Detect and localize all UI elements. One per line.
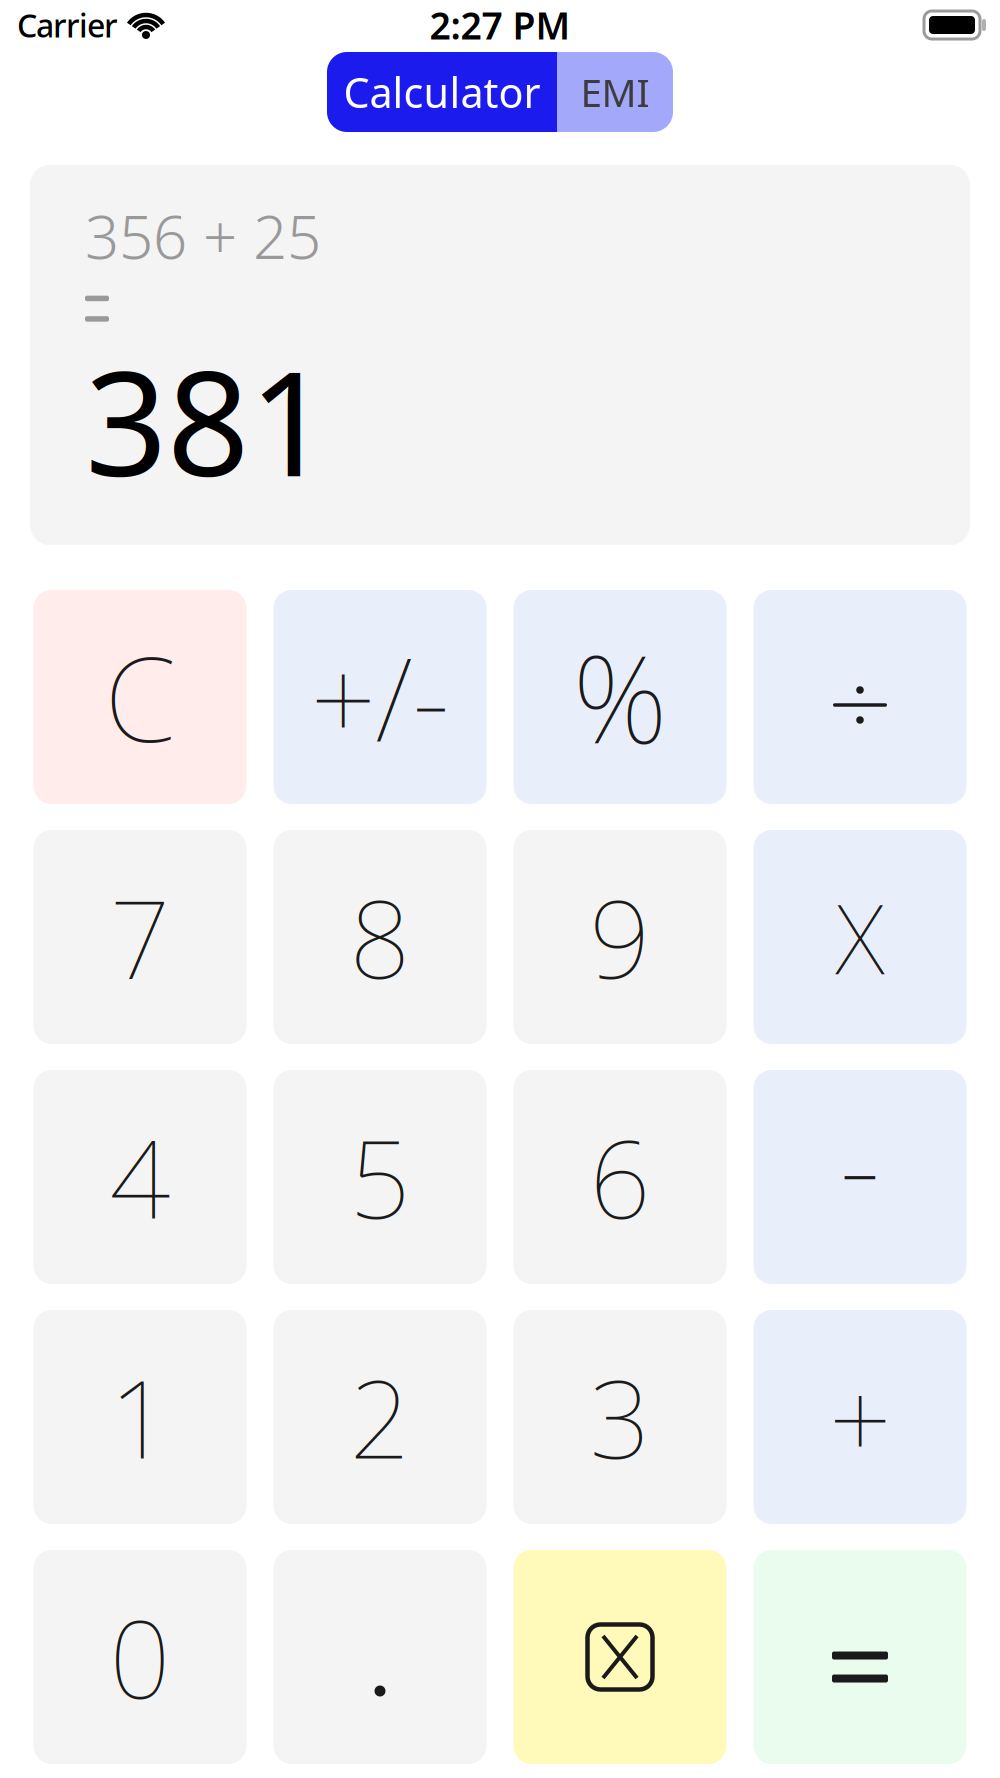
staticText: X <box>835 873 884 1001</box>
staticText: 4 <box>109 1106 170 1248</box>
staticText: + <box>829 1344 891 1490</box>
button[interactable]: X <box>753 830 966 1044</box>
staticText: 1 <box>109 1346 170 1488</box>
button[interactable]: 3 <box>513 1310 726 1524</box>
button[interactable]: Backspace <box>513 1550 726 1764</box>
button[interactable]: % <box>513 590 726 804</box>
button[interactable]: 8 <box>273 830 486 1044</box>
button[interactable]: - <box>753 1070 966 1284</box>
button[interactable]: Decimal point <box>273 1550 486 1764</box>
button[interactable]: Calculator <box>327 52 557 132</box>
button[interactable]: 0 <box>33 1550 246 1764</box>
button[interactable]: 9 <box>513 830 726 1044</box>
staticText: EMI <box>580 66 649 118</box>
button[interactable]: EMI <box>557 52 673 132</box>
staticText: 8 <box>349 866 410 1008</box>
staticText: 5 <box>349 1106 410 1248</box>
button[interactable]: 1 <box>33 1310 246 1524</box>
staticText: C <box>104 620 175 774</box>
button[interactable]: 7 <box>33 830 246 1044</box>
staticText: 3 <box>589 1346 650 1488</box>
button[interactable]: Equals <box>753 1550 966 1764</box>
button[interactable]: Divide <box>753 590 966 804</box>
button[interactable]: 5 <box>273 1070 486 1284</box>
button[interactable]: + <box>753 1310 966 1524</box>
button[interactable]: C <box>33 590 246 804</box>
staticText: 381 <box>85 325 331 516</box>
staticText: 2 <box>349 1346 410 1488</box>
staticText: Carrier <box>17 4 118 46</box>
button[interactable]: 4 <box>33 1070 246 1284</box>
staticText: 9 <box>589 866 650 1008</box>
staticText: 6 <box>589 1106 650 1248</box>
button[interactable]: +/- <box>273 590 486 804</box>
staticText: 356 + 25 <box>85 196 321 276</box>
staticText: 0 <box>109 1586 170 1728</box>
staticText: Calculator <box>343 65 540 119</box>
button[interactable]: 6 <box>513 1070 726 1284</box>
staticText: +/- <box>310 621 449 773</box>
staticText: % <box>572 617 667 777</box>
staticText: 7 <box>109 866 170 1008</box>
staticText: - <box>839 1079 880 1247</box>
button[interactable]: 2 <box>273 1310 486 1524</box>
staticText: 2:27 PM <box>429 0 570 50</box>
